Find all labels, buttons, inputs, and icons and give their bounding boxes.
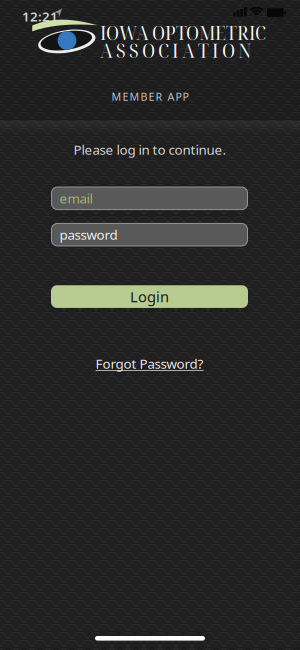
button[interactable]: Login <box>51 285 248 308</box>
staticText: IOWA OPTOMETRIC <box>100 19 266 45</box>
staticText: password <box>59 226 117 243</box>
button[interactable]: password <box>51 223 247 246</box>
staticText: email <box>59 189 92 207</box>
button[interactable]: email <box>51 187 247 210</box>
staticText: Forgot Password? <box>95 355 203 372</box>
staticText: 12:21 <box>22 7 58 25</box>
button[interactable]: Forgot Password? <box>95 355 203 372</box>
staticText: A S S O C I A T I O N <box>100 37 252 63</box>
staticText: Login <box>130 287 169 306</box>
staticText: Please log in to continue. <box>73 141 226 158</box>
staticText: M E M B E R A P P <box>111 89 188 104</box>
